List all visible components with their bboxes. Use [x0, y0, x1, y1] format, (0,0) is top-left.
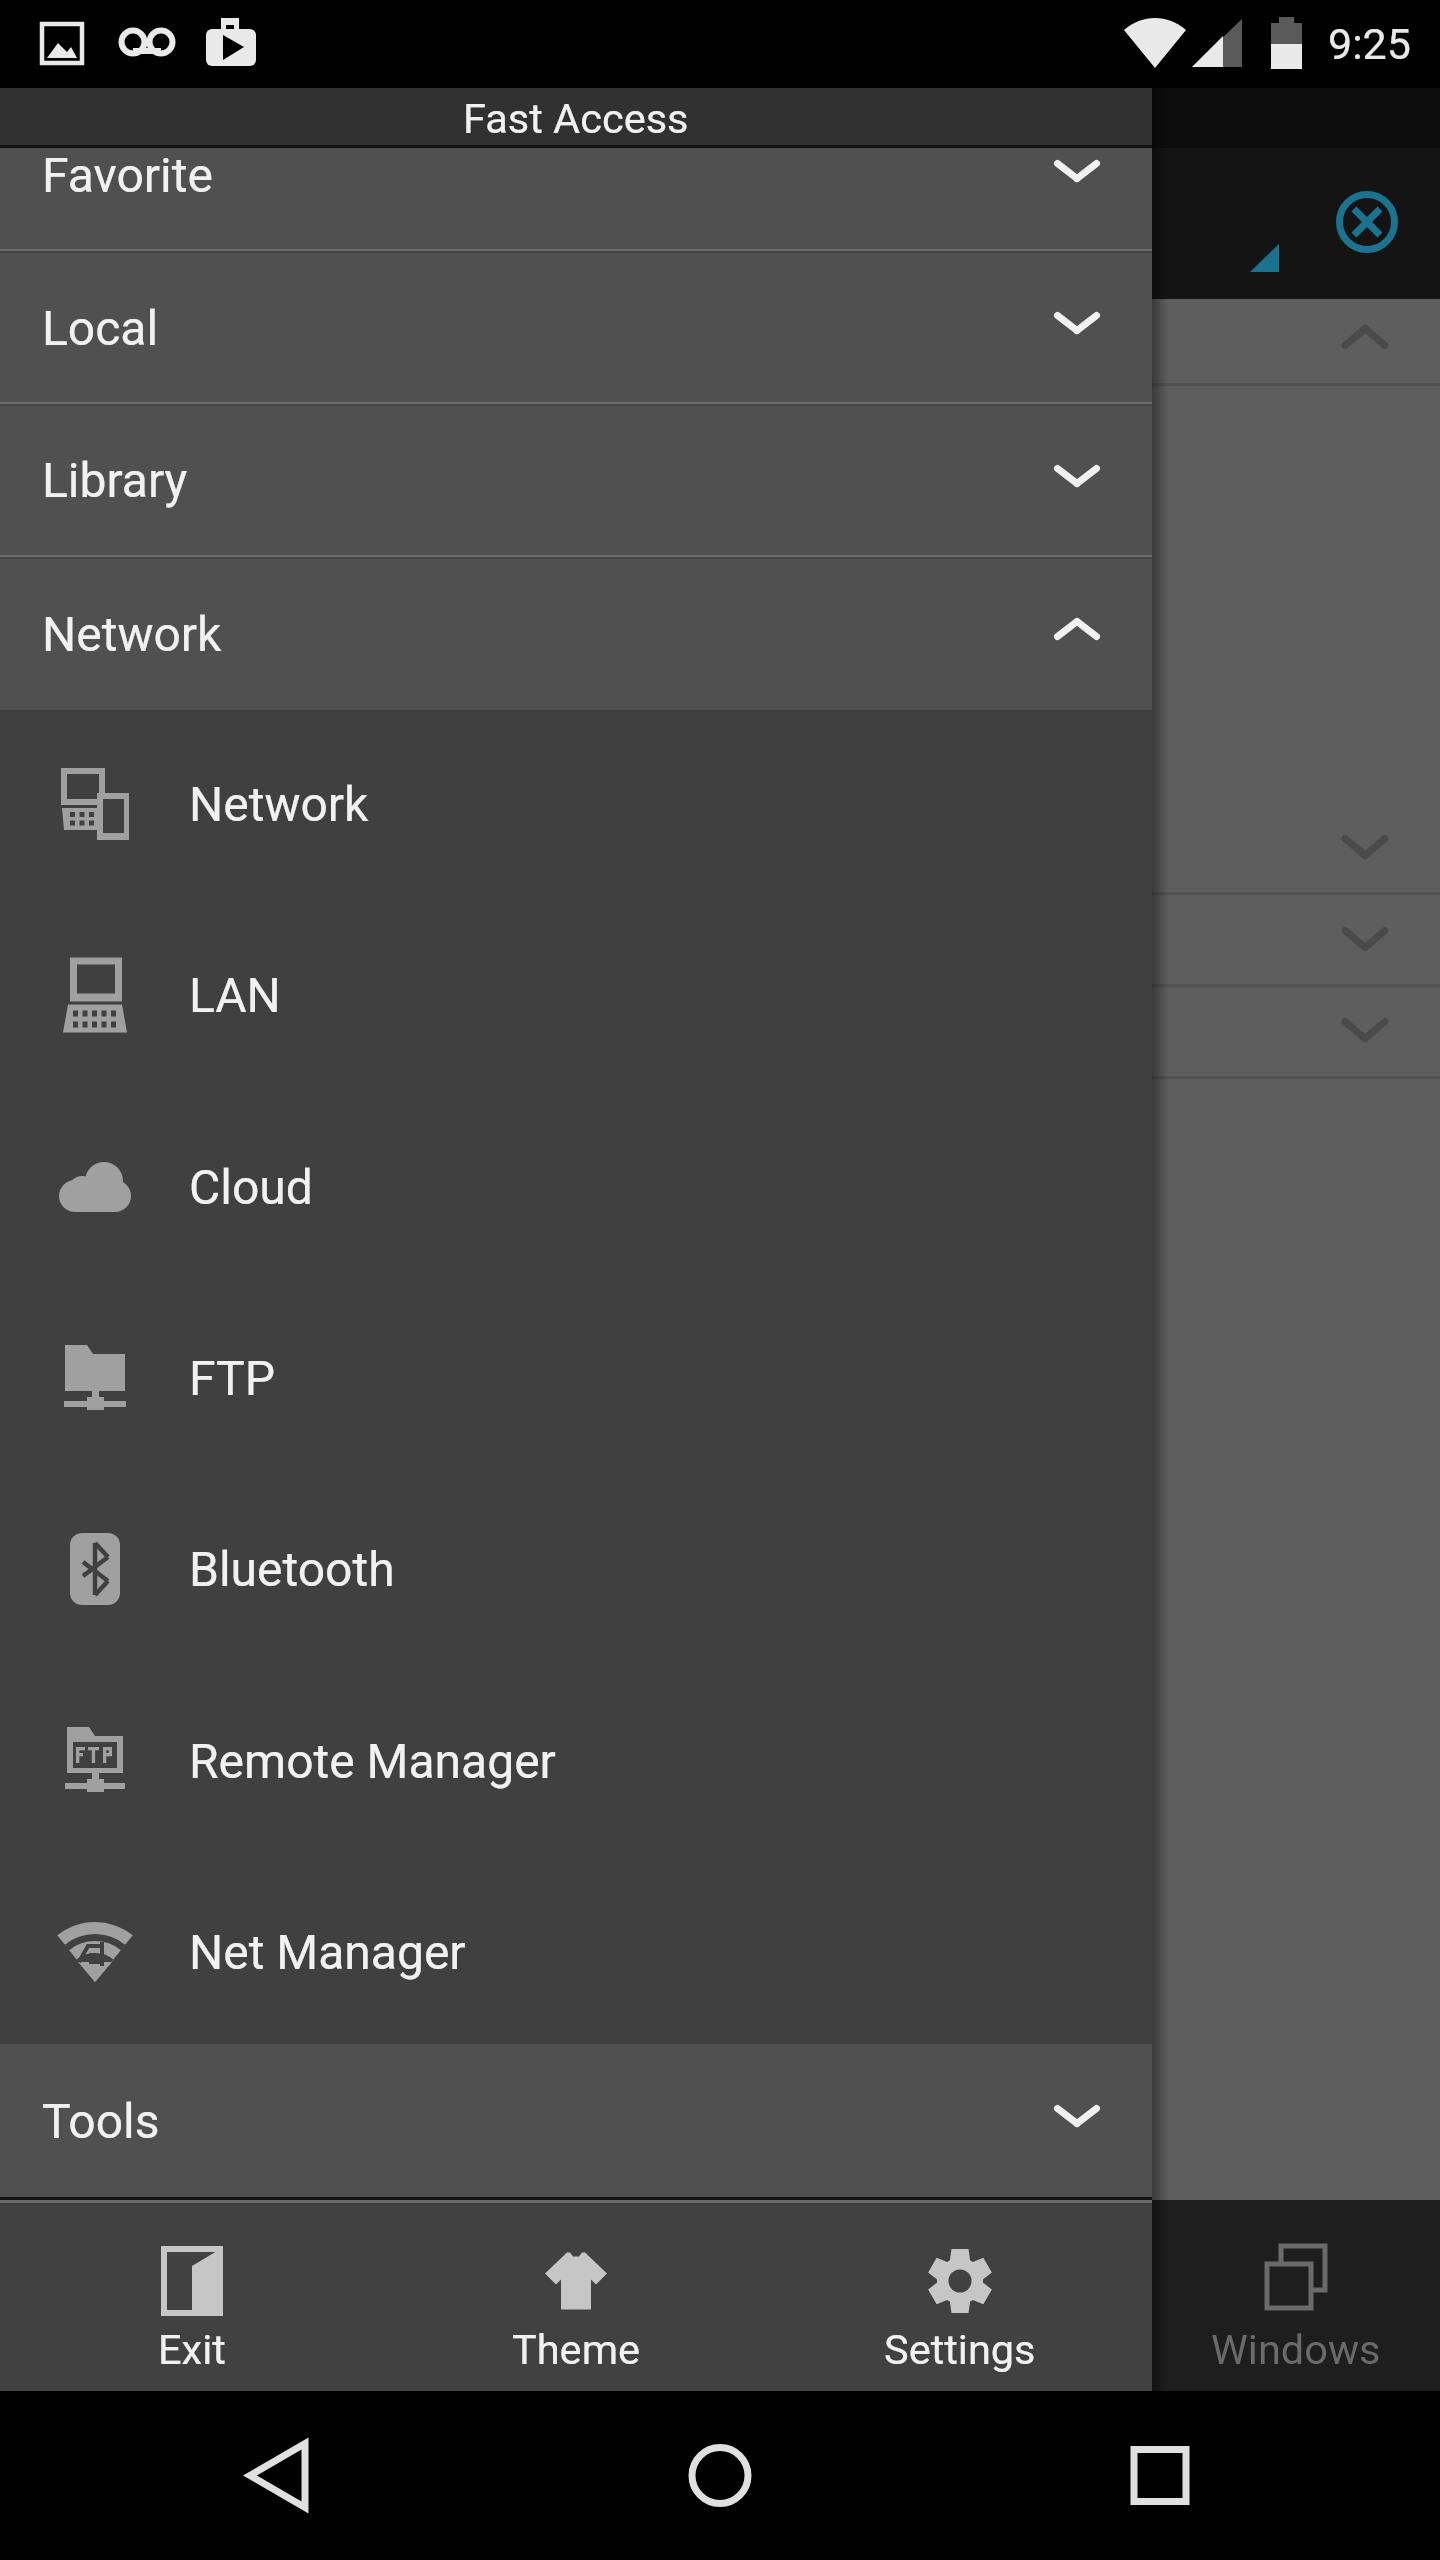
staticText: Net Manager — [189, 1924, 466, 1980]
button[interactable]: Network — [0, 558, 1152, 710]
button[interactable]: Exit — [0, 2200, 384, 2391]
staticText: Remote Manager — [189, 1733, 556, 1789]
button[interactable]: Library — [0, 405, 1152, 556]
button[interactable]: Local — [0, 253, 1152, 403]
staticText: Library — [42, 452, 188, 508]
staticText: Exit — [158, 2325, 226, 2374]
staticText: FTP — [189, 1350, 275, 1406]
button[interactable]: LAN — [0, 900, 1152, 1090]
staticText: LAN — [189, 967, 281, 1023]
staticText: Network — [189, 776, 369, 832]
button[interactable]: Windows — [1152, 2200, 1440, 2391]
button[interactable]: Net Manager — [0, 1857, 1152, 2047]
staticText: Windows — [1211, 2325, 1381, 2374]
staticText: Cloud — [189, 1159, 313, 1215]
button[interactable]: FTP — [0, 1283, 1152, 1473]
button[interactable]: Settings — [768, 2200, 1152, 2391]
button[interactable]: Network — [0, 709, 1152, 899]
staticText: Bluetooth — [189, 1541, 395, 1597]
staticText: Settings — [884, 2325, 1036, 2374]
button[interactable]: Bluetooth — [0, 1474, 1152, 1664]
button[interactable]: Tools — [0, 2044, 1152, 2196]
button[interactable]: Close — [1319, 174, 1415, 270]
staticText: 9:25 — [1328, 19, 1411, 69]
staticText: Network — [42, 606, 222, 662]
staticText: Favorite — [42, 147, 213, 203]
staticText: Local — [42, 300, 159, 356]
button[interactable]: Cloud — [0, 1092, 1152, 1282]
staticText: Fast Access — [463, 94, 689, 143]
button[interactable]: Theme — [384, 2200, 768, 2391]
staticText: Theme — [512, 2325, 641, 2374]
button[interactable]: Remote Manager — [0, 1666, 1152, 1856]
button[interactable]: Favorite — [0, 148, 1152, 251]
staticText: Tools — [42, 2093, 160, 2149]
